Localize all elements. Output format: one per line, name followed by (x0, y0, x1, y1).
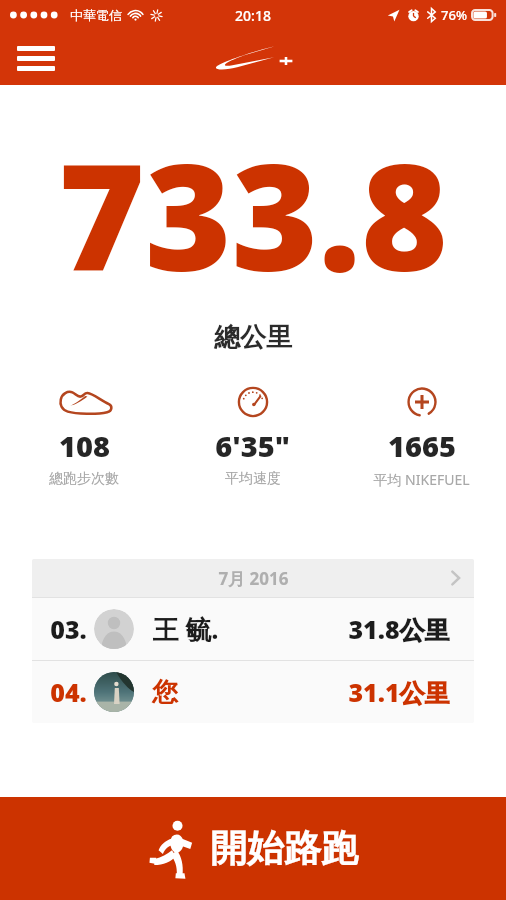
staticText: 7月 2016 (218, 567, 289, 590)
staticText: 王 毓. (152, 611, 219, 647)
staticText: 03. (50, 612, 87, 646)
staticText: 中華電信 (70, 7, 122, 23)
button[interactable]: 03. (32, 598, 474, 660)
button[interactable]: Menu (10, 36, 62, 80)
staticText: 總公里 (214, 321, 292, 354)
button[interactable]: 1665 (337, 384, 506, 489)
button[interactable]: 04. (32, 661, 474, 723)
button[interactable]: 開始路跑 (0, 797, 506, 900)
staticText: 108 (59, 426, 110, 465)
staticText: 733.8 (58, 113, 448, 315)
staticText: 04. (50, 675, 87, 709)
staticText: 平均 NIKEFUEL (373, 470, 470, 489)
staticText: 6'35" (215, 426, 290, 465)
staticText: 31.1公里 (348, 675, 450, 709)
staticText: 31.8公里 (348, 612, 450, 646)
staticText: 76% (441, 6, 467, 24)
staticText: 1665 (388, 426, 456, 465)
staticText: 開始路跑 (210, 825, 358, 872)
staticText: 平均速度 (225, 470, 281, 488)
button[interactable]: 6'35" (168, 384, 337, 488)
staticText: 您 (152, 676, 178, 709)
staticText: 20:18 (235, 6, 271, 25)
staticText: 總跑步次數 (49, 470, 119, 488)
button[interactable]: 7月 2016 (32, 559, 474, 597)
button[interactable]: 108 (0, 384, 168, 488)
